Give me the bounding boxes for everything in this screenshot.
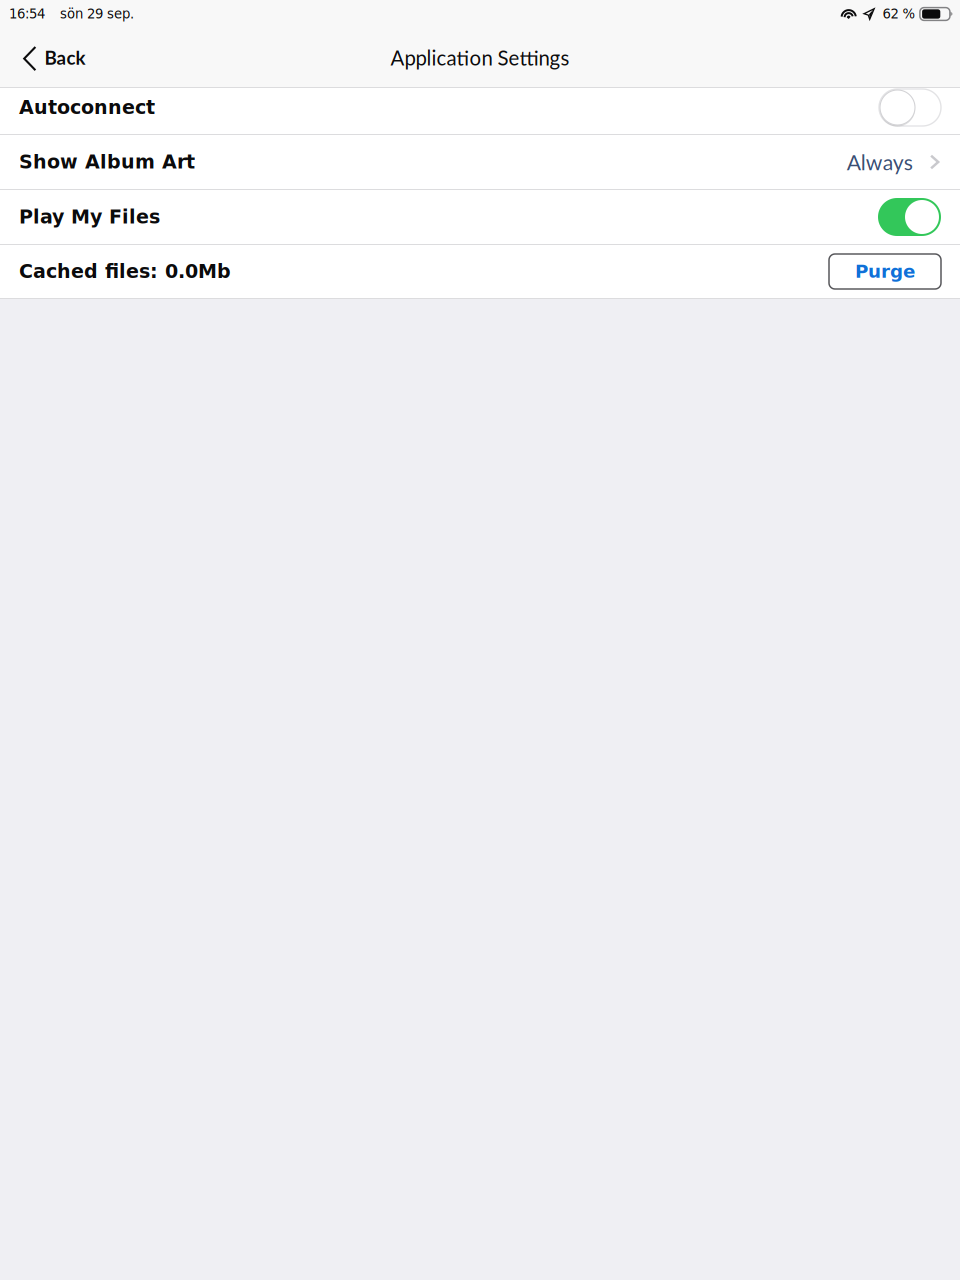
button[interactable]: Play My Files — [0, 190, 960, 244]
staticText: Autoconnect — [19, 96, 155, 119]
staticText: Cached files: 0.0Mb — [19, 260, 231, 283]
button[interactable]: Back — [0, 31, 102, 83]
button[interactable]: Autoconnect — [0, 88, 960, 134]
staticText: Application Settings — [390, 45, 569, 70]
staticText: 16:54 — [9, 6, 45, 22]
staticText: Back — [45, 46, 86, 69]
button[interactable]: Purge — [829, 254, 941, 289]
staticText: 62 % — [882, 6, 915, 22]
staticText: Purge — [855, 261, 915, 282]
staticText: Play My Files — [19, 206, 160, 228]
button[interactable]: Show Album Art — [0, 135, 960, 189]
staticText: Show Album Art — [19, 151, 195, 173]
staticText: Always — [847, 149, 913, 175]
staticText: sön 29 sep. — [60, 6, 134, 22]
